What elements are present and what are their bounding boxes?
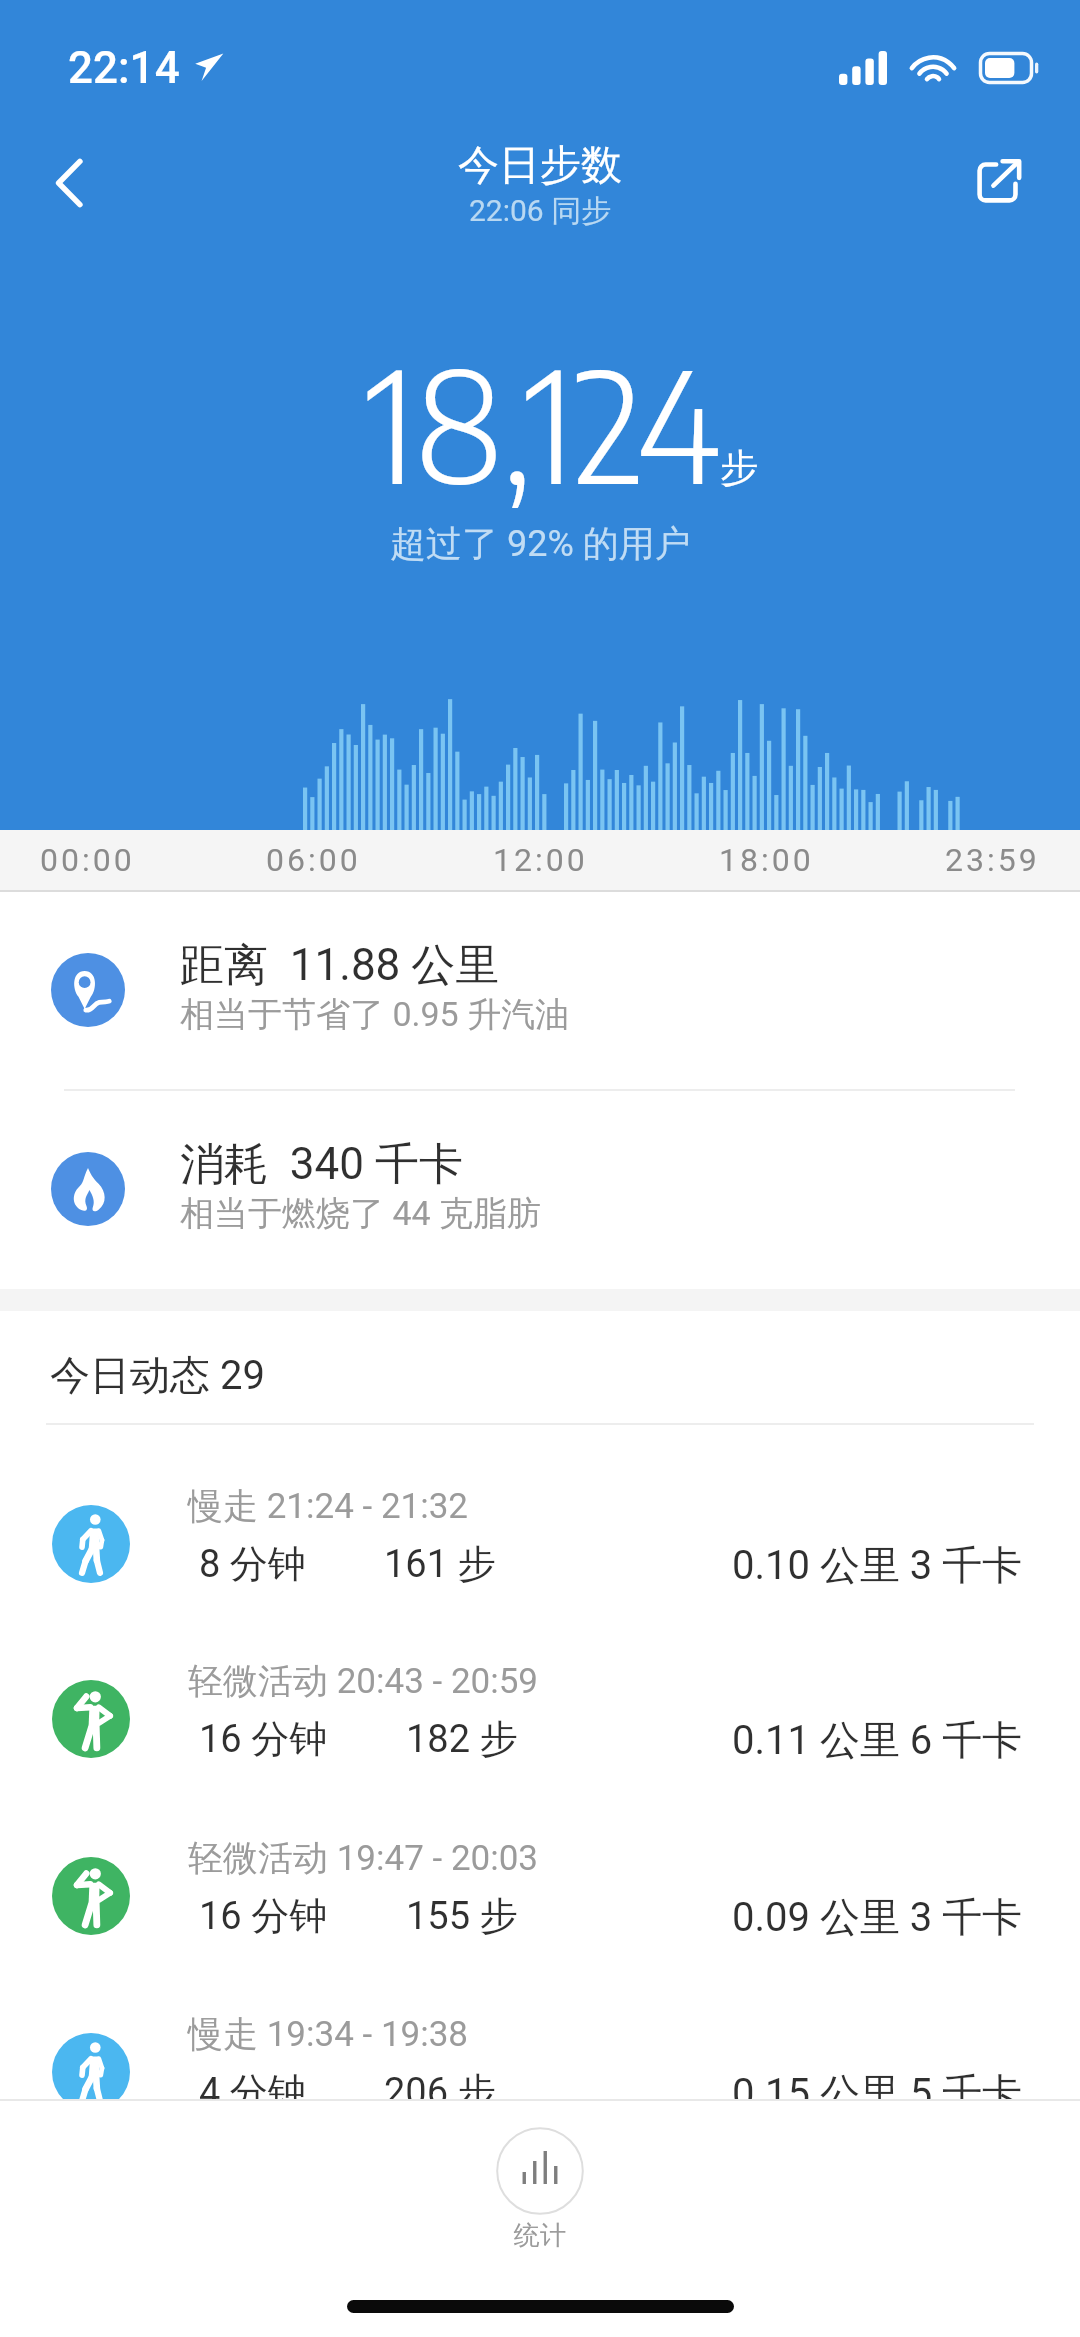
- staticText: 00:00: [40, 841, 135, 879]
- button[interactable]: 慢走 19:34 - 19:38: [0, 1980, 1080, 2154]
- button[interactable]: 今日动态 29: [0, 1311, 1080, 1423]
- staticText: 4 分钟: [199, 2068, 306, 2116]
- button[interactable]: 消耗 340 千卡: [0, 1091, 1080, 1289]
- staticText: 23:59: [945, 841, 1040, 879]
- staticText: 相当于燃烧了 44 克脂肪: [180, 1192, 542, 1235]
- staticText: 06:00: [266, 841, 361, 879]
- staticText: 206 步: [384, 2068, 496, 2116]
- button[interactable]: Back: [24, 138, 114, 228]
- staticText: 轻微活动 20:43 - 20:59: [188, 1659, 539, 1703]
- staticText: 16 分钟: [199, 1715, 328, 1763]
- staticText: 相当于节省了 0.95 升汽油: [180, 993, 570, 1036]
- staticText: 0.10 公里 3 千卡: [732, 1540, 1023, 1590]
- button[interactable]: 慢走 21:24 - 21:32: [0, 1456, 1080, 1630]
- staticText: 0.09 公里 3 千卡: [732, 1892, 1023, 1942]
- staticText: 18:00: [719, 841, 814, 879]
- staticText: 182 步: [406, 1715, 518, 1763]
- staticText: 16 分钟: [199, 1892, 328, 1940]
- staticText: 161 步: [384, 1540, 496, 1588]
- staticText: 今日步数: [458, 140, 622, 192]
- staticText: 慢走 21:24 - 21:32: [188, 1484, 469, 1528]
- staticText: 22:06 同步: [469, 192, 612, 230]
- button[interactable]: 轻微活动 19:47 - 20:03: [0, 1806, 1080, 1980]
- button[interactable]: Share: [954, 138, 1042, 226]
- staticText: 0.15 公里 5 千卡: [732, 2068, 1023, 2118]
- staticText: 18,124: [366, 326, 721, 517]
- staticText: 8 分钟: [199, 1540, 306, 1588]
- staticText: 今日动态 29: [50, 1350, 265, 1400]
- staticText: 155 步: [406, 1892, 518, 1940]
- button[interactable]: 距离 11.88 公里: [0, 892, 1080, 1089]
- staticText: 距离 11.88 公里: [180, 938, 500, 993]
- button[interactable]: 轻微活动 20:43 - 20:59: [0, 1630, 1080, 1804]
- staticText: 12:00: [493, 841, 588, 879]
- staticText: 慢走 19:34 - 19:38: [188, 2012, 469, 2056]
- staticText: 0.11 公里 6 千卡: [732, 1715, 1023, 1765]
- staticText: 轻微活动 19:47 - 20:03: [188, 1836, 539, 1880]
- staticText: 22:14: [68, 42, 180, 94]
- staticText: 步: [720, 444, 758, 492]
- staticText: 超过了 92% 的用户: [390, 521, 691, 566]
- staticText: 统计: [514, 2219, 566, 2252]
- staticText: 消耗 340 千卡: [180, 1137, 463, 1192]
- button[interactable]: 统计: [496, 2127, 584, 2252]
